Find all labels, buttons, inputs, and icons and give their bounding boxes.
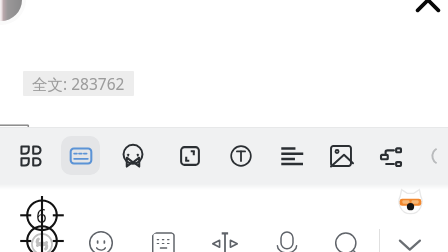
button[interactable]: Apps — [12, 137, 50, 175]
button[interactable]: Assistant — [397, 188, 424, 215]
button[interactable]: Image — [322, 137, 360, 175]
button[interactable]: Emoji — [85, 230, 117, 252]
button[interactable]: Collapse keyboard — [395, 231, 423, 252]
staticText: 6 — [36, 203, 47, 229]
button[interactable]: Resize — [171, 137, 209, 175]
button[interactable]: More — [423, 137, 448, 175]
button[interactable]: Logo — [26, 230, 58, 252]
button[interactable]: Card style — [61, 136, 100, 175]
staticText: 全文: 283762 — [32, 73, 125, 94]
button[interactable]: Search — [331, 230, 363, 252]
button[interactable]: Close — [414, 0, 442, 14]
button[interactable]: Structure — [372, 137, 410, 175]
button[interactable]: Alignment — [272, 137, 310, 175]
button[interactable]: Sticker — [114, 137, 152, 175]
button[interactable]: Avatar — [0, 0, 22, 21]
button[interactable]: 全文: 283762 — [32, 73, 125, 94]
button[interactable]: Voice input — [271, 230, 303, 252]
button[interactable]: Keyboard — [148, 230, 180, 252]
button[interactable]: Text style — [222, 137, 260, 175]
button[interactable]: Cursor — [209, 230, 241, 252]
